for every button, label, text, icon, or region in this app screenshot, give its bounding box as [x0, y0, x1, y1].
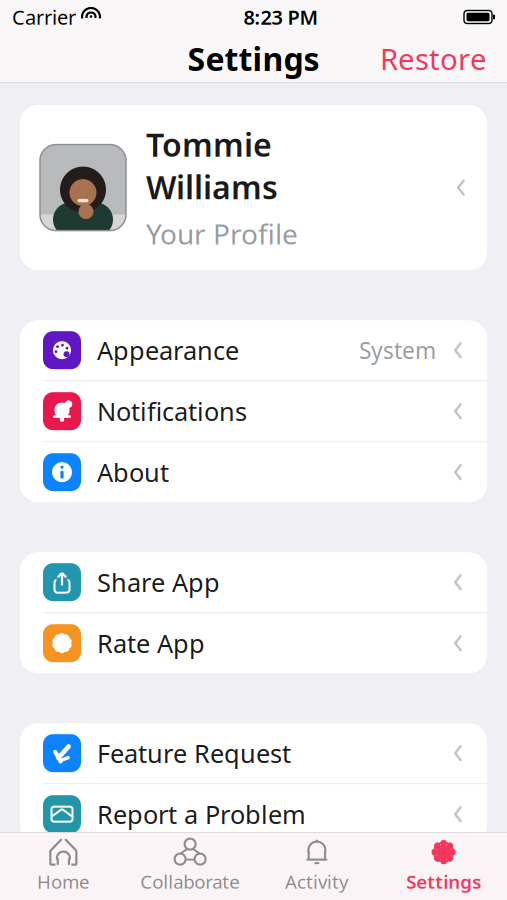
- button[interactable]: Report a Problem: [20, 784, 487, 844]
- button[interactable]: Share App: [20, 552, 487, 613]
- staticText: Settings: [406, 869, 481, 894]
- staticText: 8:23 PM: [243, 4, 318, 30]
- staticText: About: [97, 455, 169, 489]
- button[interactable]: Home: [0, 835, 127, 897]
- staticText: Notifications: [97, 394, 247, 428]
- staticText: Carrier: [12, 4, 76, 30]
- button[interactable]: Appearance: [20, 320, 487, 381]
- staticText: Activity: [285, 869, 349, 894]
- button[interactable]: Activity: [253, 835, 380, 897]
- staticText: Collaborate: [140, 869, 240, 894]
- button[interactable]: Notifications: [20, 381, 487, 442]
- button[interactable]: About: [20, 442, 487, 502]
- staticText: Share App: [97, 565, 220, 599]
- button[interactable]: Restore: [380, 39, 487, 78]
- button[interactable]: Settings: [380, 835, 507, 897]
- staticText: Rate App: [97, 626, 205, 660]
- staticText: Tommie Williams: [146, 123, 278, 208]
- staticText: System: [359, 335, 436, 365]
- button[interactable]: Rate App: [20, 613, 487, 673]
- button[interactable]: Feature Request: [20, 723, 487, 784]
- button[interactable]: Tommie Williams: [0, 105, 507, 270]
- staticText: Restore: [380, 39, 487, 78]
- staticText: Report a Problem: [97, 797, 306, 831]
- button[interactable]: Collaborate: [127, 835, 254, 897]
- staticText: Your Profile: [146, 215, 298, 252]
- staticText: Feature Request: [97, 736, 291, 770]
- button[interactable]: Privacy Policy: [20, 887, 487, 900]
- staticText: Settings: [187, 37, 319, 80]
- staticText: Appearance: [97, 333, 239, 367]
- staticText: Home: [37, 869, 90, 894]
